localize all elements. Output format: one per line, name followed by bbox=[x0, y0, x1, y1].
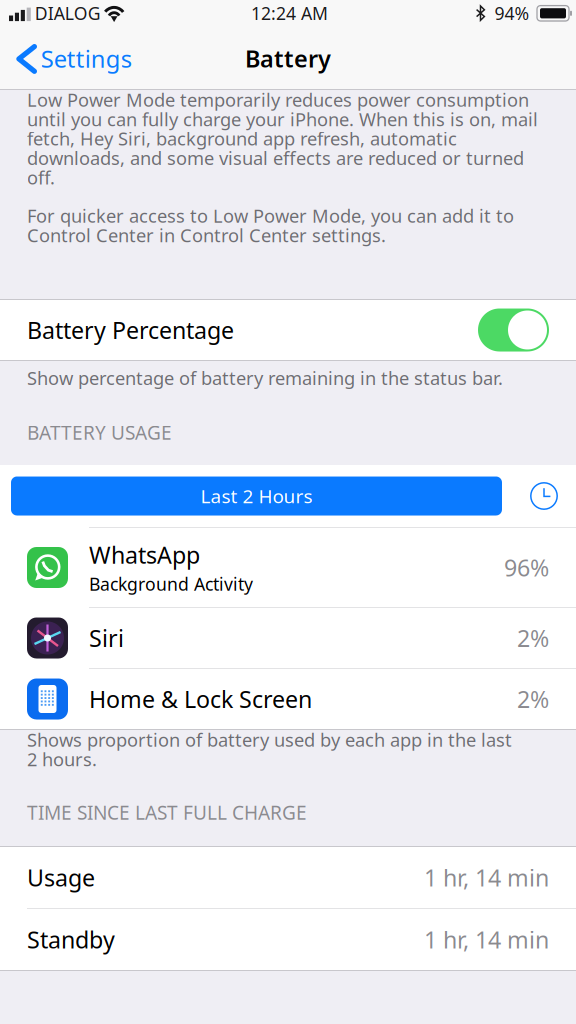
button[interactable]: Siri bbox=[0, 608, 576, 668]
staticText: Battery bbox=[245, 43, 331, 74]
staticText: Standby bbox=[27, 924, 115, 955]
staticText: Show percentage of battery remaining in … bbox=[27, 368, 503, 388]
staticText: WhatsApp bbox=[89, 539, 200, 570]
staticText: Settings bbox=[41, 43, 132, 74]
button[interactable]: Battery Percentage bbox=[0, 300, 576, 360]
staticText: TIME SINCE LAST FULL CHARGE bbox=[27, 800, 307, 825]
staticText: Last 2 Hours bbox=[200, 483, 312, 508]
button[interactable]: Last 10 Days bbox=[524, 476, 564, 516]
staticText: 2% bbox=[517, 623, 549, 653]
staticText: For quicker access to Low Power Mode, yo… bbox=[27, 206, 514, 245]
staticText: Usage bbox=[27, 862, 95, 893]
staticText: Background Activity bbox=[89, 572, 253, 596]
staticText: 2% bbox=[517, 684, 549, 714]
staticText: Shows proportion of battery used by each… bbox=[27, 730, 512, 769]
staticText: DIALOG bbox=[35, 2, 101, 25]
staticText: BATTERY USAGE bbox=[27, 420, 172, 445]
staticText: 1 hr, 14 min bbox=[424, 862, 549, 893]
staticText: Siri bbox=[89, 623, 124, 653]
staticText: 96% bbox=[504, 552, 549, 583]
button[interactable]: Home & Lock Screen bbox=[0, 669, 576, 729]
button[interactable]: Usage bbox=[0, 847, 576, 908]
staticText: 1 hr, 14 min bbox=[424, 924, 549, 955]
staticText: 12:24 AM bbox=[251, 2, 328, 25]
button[interactable]: Standby bbox=[0, 909, 576, 970]
staticText: Home & Lock Screen bbox=[89, 684, 312, 714]
button[interactable]: Last 2 Hours bbox=[11, 476, 502, 515]
staticText: 94% bbox=[494, 2, 529, 25]
button[interactable]: Settings bbox=[0, 28, 144, 89]
staticText: Battery Percentage bbox=[27, 315, 234, 345]
button[interactable]: WhatsApp bbox=[0, 528, 576, 607]
staticText: Low Power Mode temporarily reduces power… bbox=[27, 90, 538, 187]
